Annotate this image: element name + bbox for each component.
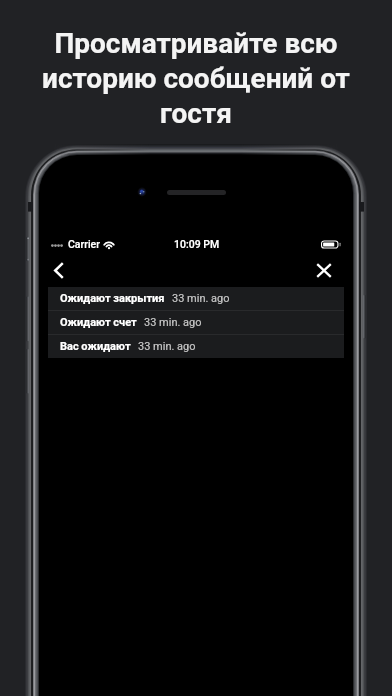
button[interactable]: Back: [41, 254, 77, 288]
staticText: 33 min. ago: [172, 292, 230, 305]
button[interactable]: Вас ожидают: [48, 335, 344, 358]
staticText: 33 min. ago: [144, 316, 202, 329]
button[interactable]: Ожидают закрытия: [48, 287, 344, 310]
staticText: 10:09 PM: [174, 238, 220, 250]
button[interactable]: Ожидают счет: [48, 311, 344, 334]
staticText: Просматривайте всю историю сообщений от …: [12, 27, 380, 130]
staticText: Вас ожидают: [60, 340, 131, 353]
staticText: Ожидают закрытия: [60, 292, 165, 305]
staticText: 33 min. ago: [138, 340, 196, 353]
button[interactable]: Close: [304, 254, 340, 288]
staticText: Ожидают счет: [60, 316, 137, 329]
staticText: Carrier: [68, 238, 100, 250]
